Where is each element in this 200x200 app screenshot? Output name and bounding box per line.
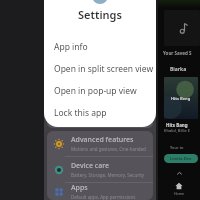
staticText: Advanced features [71,135,134,145]
button[interactable]: Apps [47,183,153,200]
button[interactable]: Home [172,180,186,198]
staticText: Apps [71,183,88,193]
staticText: Your to [170,145,184,150]
staticText: Open in split screen view [54,63,154,75]
staticText: Limita Dee [170,156,192,161]
staticText: Your Saved S [163,50,192,56]
staticText: Biarka [170,66,187,73]
staticText: App info [54,41,88,53]
button[interactable]: App info [44,36,156,58]
button[interactable]: Liked songs [164,10,200,46]
button[interactable]: Open in split screen view [44,58,156,80]
staticText: Motions and gestures, One-handed mode [71,146,153,152]
staticText: Default apps, App permissions [71,194,136,200]
button[interactable]: Collapse [158,168,200,178]
button[interactable]: Advanced features [47,131,153,156]
staticText: Device care [71,161,110,171]
button[interactable]: Lock this app [44,102,156,124]
button[interactable]: Hits Beng [164,77,198,119]
staticText: Khalid, Billie E [164,128,191,133]
staticText: Lock this app [54,107,107,119]
staticText: Hits Bang [166,122,188,128]
button[interactable]: Limita Dee [164,154,198,163]
staticText: Battery, Storage, Memory, Security [71,172,145,178]
staticText: Settings [78,7,122,22]
staticText: Open in pop-up view [54,85,137,97]
staticText: Hits Beng [171,96,191,101]
button[interactable]: Device care [47,157,153,182]
staticText: Home [174,191,184,196]
button[interactable]: Open in pop-up view [44,80,156,102]
